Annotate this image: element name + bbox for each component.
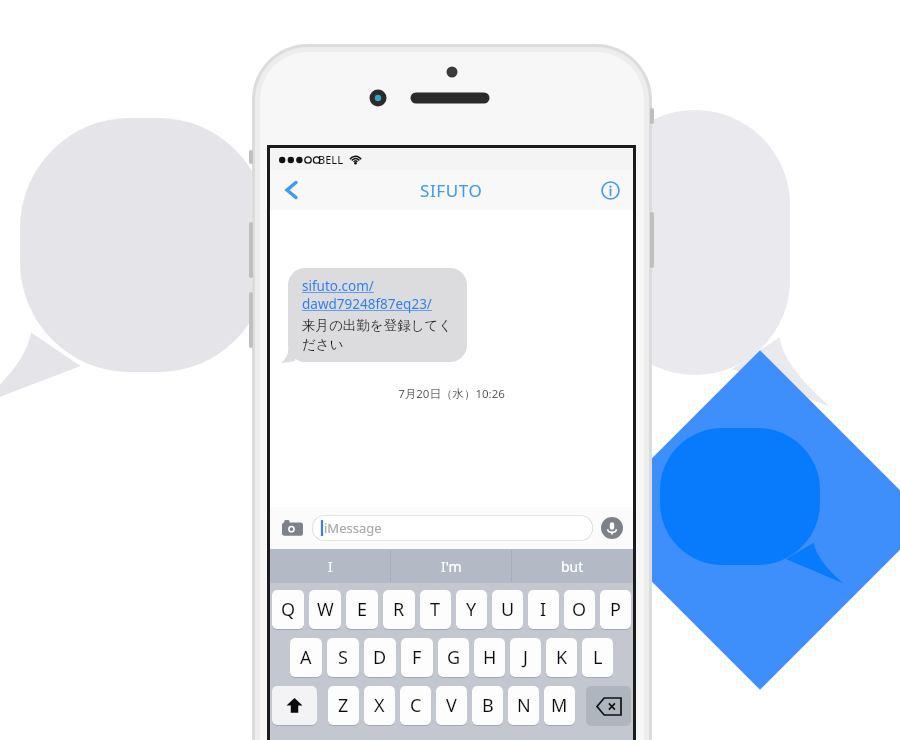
button[interactable]: Z bbox=[328, 686, 359, 725]
button[interactable]: O bbox=[564, 590, 595, 629]
button[interactable]: Q bbox=[272, 590, 304, 629]
button[interactable]: C bbox=[400, 686, 431, 725]
button[interactable]: Camera bbox=[278, 514, 306, 542]
staticText: K bbox=[556, 645, 568, 670]
button[interactable]: X bbox=[364, 686, 395, 725]
button[interactable]: G bbox=[438, 638, 469, 677]
staticText: D bbox=[373, 645, 387, 670]
staticText: M bbox=[551, 693, 568, 718]
staticText: R bbox=[393, 597, 405, 622]
button[interactable]: Delete bbox=[586, 686, 631, 726]
staticText: BELL bbox=[318, 152, 344, 167]
button[interactable]: K bbox=[546, 638, 577, 677]
button[interactable]: Info bbox=[593, 173, 627, 207]
staticText: I bbox=[328, 557, 333, 576]
staticText: G bbox=[447, 645, 461, 670]
staticText: iMessage bbox=[324, 519, 382, 537]
staticText: P bbox=[610, 597, 621, 622]
staticText: SIFUTO bbox=[420, 179, 483, 202]
button[interactable]: I bbox=[528, 590, 559, 629]
staticText: Z bbox=[338, 693, 349, 718]
button[interactable]: sifuto.com/ bbox=[288, 268, 467, 362]
button[interactable]: J bbox=[510, 638, 541, 677]
staticText: V bbox=[446, 693, 457, 718]
button[interactable]: U bbox=[492, 590, 523, 629]
button[interactable]: F bbox=[401, 638, 433, 677]
staticText: Q bbox=[281, 597, 296, 622]
button[interactable]: Y bbox=[456, 590, 487, 629]
button[interactable]: iMessage bbox=[312, 515, 593, 541]
button[interactable]: M bbox=[544, 686, 575, 725]
staticText: A bbox=[300, 645, 312, 670]
staticText: I bbox=[540, 597, 547, 622]
staticText: O bbox=[572, 597, 587, 622]
button[interactable]: E bbox=[346, 590, 378, 629]
button[interactable]: P bbox=[600, 590, 631, 629]
staticText: Y bbox=[466, 597, 477, 622]
staticText: 7月20日（水）10:26 bbox=[270, 386, 633, 402]
button[interactable]: N bbox=[508, 686, 539, 725]
staticText: T bbox=[430, 597, 441, 622]
button[interactable]: I bbox=[270, 549, 391, 583]
button[interactable]: I'm bbox=[391, 549, 512, 583]
button[interactable]: L bbox=[582, 638, 613, 677]
staticText: 来月の出勤を登録してく ださい bbox=[302, 317, 453, 353]
button[interactable]: A bbox=[290, 638, 322, 677]
staticText: L bbox=[593, 645, 603, 670]
staticText: S bbox=[338, 645, 348, 670]
button[interactable]: B bbox=[472, 686, 503, 725]
button[interactable]: Voice message bbox=[599, 515, 625, 541]
button[interactable]: Back bbox=[274, 172, 310, 208]
button[interactable]: Shift bbox=[272, 686, 317, 725]
staticText: dawd79248f87eq23/ bbox=[302, 295, 432, 313]
button[interactable]: H bbox=[474, 638, 505, 677]
button[interactable]: V bbox=[436, 686, 467, 725]
staticText: J bbox=[523, 645, 528, 670]
button[interactable]: S bbox=[327, 638, 359, 677]
button[interactable]: W bbox=[309, 590, 341, 629]
button[interactable]: but bbox=[512, 549, 633, 583]
staticText: B bbox=[482, 693, 494, 718]
staticText: E bbox=[357, 597, 368, 622]
button[interactable]: D bbox=[364, 638, 396, 677]
staticText: sifuto.com/ bbox=[302, 277, 374, 295]
button[interactable]: T bbox=[420, 590, 451, 629]
staticText: X bbox=[374, 693, 385, 718]
staticText: I'm bbox=[441, 557, 462, 576]
staticText: H bbox=[483, 645, 497, 670]
staticText: N bbox=[517, 693, 531, 718]
staticText: W bbox=[317, 597, 334, 622]
staticText: F bbox=[412, 645, 422, 670]
staticText: but bbox=[561, 557, 584, 576]
staticText: U bbox=[501, 597, 515, 622]
button[interactable]: R bbox=[383, 590, 415, 629]
staticText: C bbox=[410, 693, 422, 718]
